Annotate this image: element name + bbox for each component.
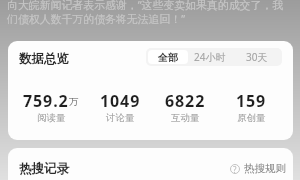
staticText: 讨论量	[106, 112, 135, 124]
staticText: 全部	[158, 51, 178, 64]
staticText: 向大皖新闻记者表示感谢，“这些变卖如果真的成交了，我	[7, 0, 284, 12]
staticText: 阅读量	[37, 112, 66, 124]
staticText: 万	[69, 96, 79, 108]
staticText: 1049	[100, 90, 141, 112]
staticText: ?	[233, 164, 237, 174]
button[interactable]: 热搜规则说明	[230, 162, 286, 175]
staticText: 数据总览	[19, 51, 69, 67]
staticText: 24小时	[194, 50, 226, 64]
button[interactable]: 24小时	[188, 48, 232, 66]
staticText: 热搜规则	[244, 162, 286, 175]
staticText: 30天	[246, 50, 268, 64]
staticText: 互动量	[171, 112, 200, 124]
staticText: 6822	[165, 90, 206, 112]
staticText: 们债权人数千万的债务将无法追回！”	[7, 11, 186, 26]
staticText: 159	[236, 90, 267, 112]
button[interactable]: 30天	[232, 48, 281, 66]
staticText: 原创量	[237, 112, 266, 124]
button[interactable]: 全部	[148, 50, 188, 64]
staticText: 759.2	[23, 90, 69, 112]
other: 热搜规则说明	[230, 164, 240, 174]
staticText: 热搜记录	[19, 161, 69, 177]
